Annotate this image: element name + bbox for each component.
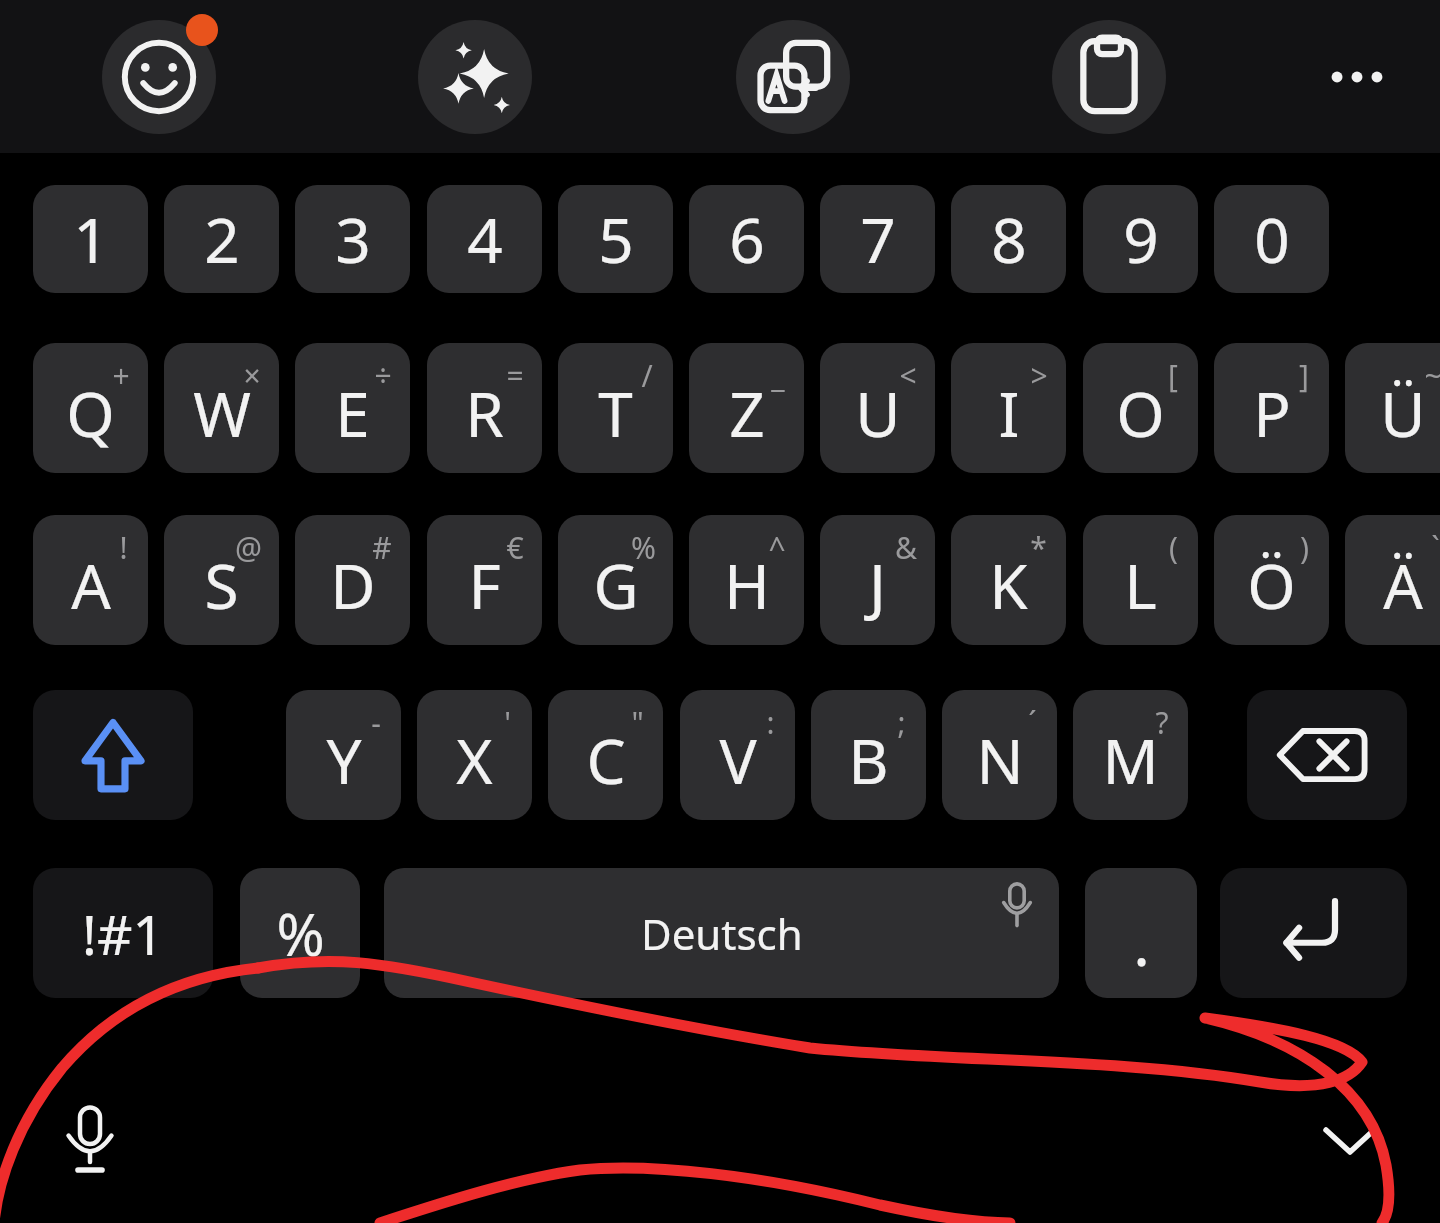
button[interactable]: L: [1083, 515, 1198, 645]
button[interactable]: E: [295, 343, 410, 473]
staticText: 5: [598, 197, 634, 281]
button[interactable]: Emoji: [102, 20, 216, 134]
button[interactable]: Deutsch: [384, 868, 1059, 998]
button[interactable]: 2: [164, 185, 279, 293]
staticText: L: [1124, 543, 1157, 627]
button[interactable]: H: [689, 515, 804, 645]
button[interactable]: I: [951, 343, 1066, 473]
staticText: ): [1300, 527, 1309, 568]
button[interactable]: R: [427, 343, 542, 473]
button[interactable]: C: [548, 690, 663, 820]
button[interactable]: Shift: [33, 690, 193, 820]
staticText: 6: [729, 197, 765, 281]
button[interactable]: B: [811, 690, 926, 820]
staticText: ×: [243, 355, 261, 396]
button[interactable]: F: [427, 515, 542, 645]
button[interactable]: V: [680, 690, 795, 820]
staticText: Deutsch: [641, 905, 803, 962]
staticText: 9: [1123, 197, 1159, 281]
button[interactable]: U: [820, 343, 935, 473]
button[interactable]: 1: [33, 185, 148, 293]
button[interactable]: Z: [689, 343, 804, 473]
button[interactable]: D: [295, 515, 410, 645]
staticText: H: [724, 543, 770, 627]
button[interactable]: P: [1214, 343, 1329, 473]
staticText: *: [1030, 527, 1047, 568]
button[interactable]: O: [1083, 343, 1198, 473]
staticText: 3: [335, 197, 371, 281]
button[interactable]: AI suggestions: [418, 20, 532, 134]
button[interactable]: X: [417, 690, 532, 820]
button[interactable]: Enter: [1220, 868, 1407, 998]
staticText: K: [989, 543, 1028, 627]
staticText: D: [330, 543, 376, 627]
staticText: N: [976, 718, 1024, 802]
staticText: €: [506, 527, 524, 568]
staticText: P: [1253, 371, 1291, 455]
staticText: T: [598, 371, 633, 455]
button[interactable]: Ä: [1345, 515, 1440, 645]
staticText: -: [371, 702, 381, 743]
staticText: Q: [66, 371, 115, 455]
button[interactable]: 7: [820, 185, 935, 293]
button[interactable]: N: [942, 690, 1057, 820]
staticText: W: [193, 371, 251, 455]
staticText: ?: [1155, 702, 1169, 743]
staticText: I: [998, 371, 1020, 455]
staticText: V: [719, 718, 757, 802]
button[interactable]: Translate: [736, 20, 850, 134]
staticText: >: [1030, 355, 1048, 396]
button[interactable]: A: [33, 515, 148, 645]
staticText: ´: [1028, 702, 1037, 743]
staticText: A: [71, 543, 111, 627]
button[interactable]: Symbols: [33, 868, 213, 998]
button[interactable]: Voice input: [40, 1090, 140, 1190]
staticText: M: [1102, 718, 1159, 802]
staticText: ÷: [374, 355, 392, 396]
staticText: #: [372, 527, 392, 568]
button[interactable]: S: [164, 515, 279, 645]
button[interactable]: 4: [427, 185, 542, 293]
button[interactable]: M: [1073, 690, 1188, 820]
button[interactable]: Hide keyboard: [1300, 1090, 1400, 1190]
button[interactable]: T: [558, 343, 673, 473]
staticText: [: [1168, 355, 1178, 396]
staticText: B: [848, 718, 889, 802]
staticText: J: [869, 543, 886, 627]
button[interactable]: 9: [1083, 185, 1198, 293]
staticText: =: [506, 355, 524, 396]
staticText: ': [504, 702, 511, 743]
staticText: ": [631, 702, 644, 743]
staticText: O: [1116, 371, 1165, 455]
button[interactable]: J: [820, 515, 935, 645]
button[interactable]: G: [558, 515, 673, 645]
staticText: %: [631, 527, 656, 568]
button[interactable]: Q: [33, 343, 148, 473]
button[interactable]: Percent: [240, 868, 360, 998]
button[interactable]: K: [951, 515, 1066, 645]
staticText: !#1: [82, 896, 164, 971]
button[interactable]: Backspace: [1247, 690, 1407, 820]
staticText: ~: [1424, 355, 1440, 396]
button[interactable]: More options: [1300, 20, 1414, 134]
staticText: /: [641, 355, 653, 396]
staticText: @: [235, 527, 262, 568]
button[interactable]: Ö: [1214, 515, 1329, 645]
button[interactable]: Ü: [1345, 343, 1440, 473]
button[interactable]: Y: [286, 690, 401, 820]
staticText: F: [468, 543, 501, 627]
button[interactable]: 6: [689, 185, 804, 293]
button[interactable]: Period: [1085, 868, 1197, 998]
staticText: &: [895, 527, 917, 568]
staticText: ]: [1299, 355, 1309, 396]
staticText: 2: [204, 197, 240, 281]
button[interactable]: 5: [558, 185, 673, 293]
button[interactable]: 8: [951, 185, 1066, 293]
staticText: %: [276, 894, 325, 973]
staticText: `: [1431, 527, 1440, 568]
staticText: :: [766, 702, 775, 743]
button[interactable]: Clipboard: [1052, 20, 1166, 134]
button[interactable]: W: [164, 343, 279, 473]
button[interactable]: 0: [1214, 185, 1329, 293]
button[interactable]: 3: [295, 185, 410, 293]
